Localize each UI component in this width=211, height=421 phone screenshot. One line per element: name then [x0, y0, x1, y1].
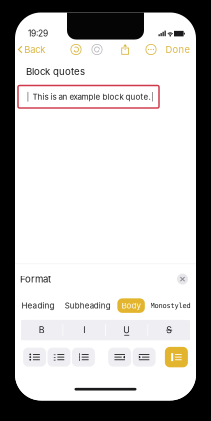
staticText: I — [83, 325, 85, 335]
button[interactable]: B — [21, 320, 63, 340]
staticText: Subheading — [65, 301, 111, 310]
button[interactable]: Body — [117, 298, 145, 313]
button[interactable]: Redo — [86, 40, 107, 59]
staticText: Done — [165, 44, 189, 55]
button[interactable]: Heading — [18, 298, 58, 313]
staticText: Monostyled — [150, 302, 190, 310]
staticText: 19:29 — [28, 28, 48, 38]
button[interactable]: Close — [174, 271, 191, 288]
staticText: Heading — [21, 301, 54, 310]
button[interactable]: Back — [14, 40, 49, 59]
button[interactable]: Undo — [65, 40, 86, 59]
button[interactable]: Done — [161, 40, 193, 59]
staticText: Body — [122, 301, 141, 310]
button[interactable]: More — [140, 40, 161, 59]
button[interactable]: Share — [117, 41, 133, 58]
button[interactable]: Format — [23, 348, 46, 367]
staticText: B — [39, 325, 45, 335]
staticText: Format — [20, 273, 51, 285]
staticText: U — [123, 325, 130, 335]
button[interactable]: S — [148, 320, 190, 340]
button[interactable]: Monostyled — [148, 299, 193, 313]
button[interactable]: Subheading — [61, 298, 114, 313]
button[interactable]: Format — [72, 348, 95, 367]
button[interactable]: Format — [47, 348, 70, 367]
staticText: S — [166, 325, 172, 335]
button[interactable]: Format — [108, 348, 131, 367]
button[interactable]: Block quote — [165, 347, 188, 367]
staticText: Back — [24, 44, 45, 55]
staticText: Block quotes — [26, 66, 85, 77]
button[interactable]: I — [63, 320, 105, 340]
staticText: This is an example block quote. — [33, 92, 151, 102]
button[interactable]: Format — [133, 348, 156, 367]
button[interactable]: U — [106, 320, 147, 340]
